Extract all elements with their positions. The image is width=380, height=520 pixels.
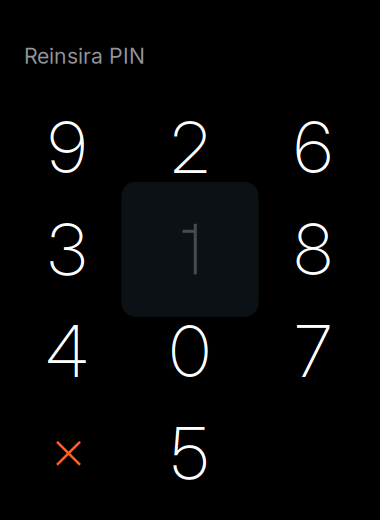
button[interactable]: 8	[251, 198, 374, 300]
staticText: 6	[294, 105, 332, 190]
button[interactable]: 7	[251, 300, 374, 402]
staticText: 7	[295, 309, 331, 394]
button[interactable]: 3	[5, 198, 128, 300]
button[interactable]: 5	[128, 402, 251, 504]
staticText: 2	[171, 105, 209, 190]
button[interactable]: 4	[5, 300, 128, 402]
staticText: 8	[294, 207, 332, 292]
staticText: 5	[171, 411, 209, 496]
button[interactable]: 6	[251, 96, 374, 198]
button[interactable]: Delete	[5, 402, 128, 504]
button[interactable]	[128, 198, 251, 300]
staticText: 9	[48, 105, 86, 190]
staticText: 3	[47, 207, 86, 292]
button[interactable]: 9	[5, 96, 128, 198]
button[interactable]: 2	[128, 96, 251, 198]
staticText: 4	[46, 309, 88, 394]
button[interactable]: 0	[128, 300, 251, 402]
staticText: 0	[169, 309, 210, 394]
staticText: Reinsira PIN	[24, 43, 145, 69]
